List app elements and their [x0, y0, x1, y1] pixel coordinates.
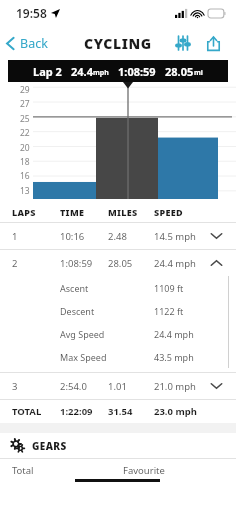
staticText: Back	[20, 35, 48, 52]
staticText: 1:08:59	[118, 64, 156, 79]
staticText: 2:54.0	[60, 380, 87, 393]
staticText: Total	[12, 464, 34, 477]
staticText: 20	[20, 142, 30, 154]
staticText: 16	[20, 170, 30, 182]
staticText: 28.05	[108, 257, 133, 270]
staticText: 2.48	[108, 230, 127, 243]
button[interactable]: 2	[0, 250, 236, 276]
staticText: 13	[20, 185, 30, 197]
staticText: 14.5 mph	[154, 230, 196, 243]
staticText: mph	[93, 68, 109, 78]
button[interactable]: Filter	[168, 28, 198, 58]
staticText: SPEED	[154, 206, 183, 218]
staticText: LAPS	[12, 206, 36, 218]
staticText: 24.4 mph	[154, 328, 194, 340]
staticText: GEARS	[32, 439, 67, 453]
staticText: 24.4	[71, 64, 93, 79]
staticText: Lap 2	[33, 64, 62, 79]
staticText: 2	[12, 257, 18, 270]
staticText: Favourite	[123, 464, 165, 477]
staticText: 10:16	[60, 230, 85, 243]
staticText: 43.5 mph	[154, 351, 194, 363]
staticText: 1109 ft	[154, 282, 184, 294]
staticText: 31.54	[108, 405, 133, 418]
staticText: 1:08:59	[60, 257, 93, 270]
staticText: 3	[12, 380, 18, 393]
staticText: 24.4 mph	[154, 257, 196, 270]
staticText: 18	[20, 156, 30, 168]
staticText: Avg Speed	[60, 328, 105, 340]
staticText: 27	[20, 98, 30, 110]
staticText: Ascent	[60, 282, 89, 294]
staticText: Descent	[60, 305, 95, 317]
staticText: TIME	[60, 206, 85, 218]
staticText: 19:58	[16, 5, 47, 21]
staticText: 22	[20, 127, 30, 139]
staticText: 1122 ft	[154, 305, 184, 317]
staticText: 28.05	[165, 64, 194, 79]
button[interactable]: 1	[0, 223, 236, 249]
staticText: 23.0 mph	[154, 405, 197, 418]
staticText: 21.0 mph	[154, 380, 196, 393]
staticText: 1:22:09	[60, 405, 93, 418]
staticText: 1	[12, 230, 18, 243]
button[interactable]: Lap 2	[8, 60, 228, 82]
button[interactable]: GEARS	[0, 433, 236, 458]
staticText: 29	[20, 84, 30, 96]
staticText: mi	[194, 68, 203, 78]
staticText: TOTAL	[12, 405, 42, 418]
staticText: Max Speed	[60, 351, 107, 363]
staticText: 1.01	[108, 380, 127, 393]
staticText: MILES	[108, 206, 138, 218]
staticText: CYCLING	[84, 34, 152, 53]
button[interactable]: Share	[198, 28, 228, 58]
button[interactable]: Back	[0, 26, 56, 60]
staticText: 25	[20, 113, 30, 125]
button[interactable]: 3	[0, 373, 236, 399]
